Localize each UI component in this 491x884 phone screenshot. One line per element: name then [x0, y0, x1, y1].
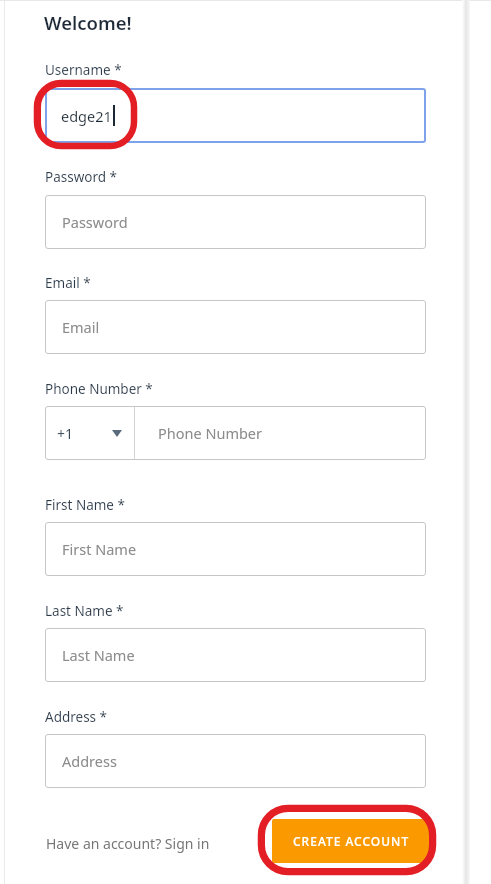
- staticText: Last Name: [62, 645, 135, 665]
- staticText: Address *: [45, 708, 108, 726]
- staticText: +1: [57, 424, 74, 443]
- staticText: CREATE ACCOUNT: [293, 833, 410, 849]
- staticText: Email: [62, 317, 100, 337]
- staticText: Password *: [45, 168, 118, 186]
- button[interactable]: +1: [45, 406, 426, 460]
- button[interactable]: Email: [45, 300, 426, 354]
- button[interactable]: First Name: [45, 522, 426, 576]
- staticText: Password: [62, 212, 128, 232]
- button[interactable]: Address: [45, 734, 426, 788]
- staticText: Username *: [45, 61, 122, 79]
- staticText: Welcome!: [44, 10, 132, 35]
- staticText: Email *: [45, 274, 91, 292]
- staticText: First Name *: [45, 496, 125, 514]
- staticText: edge21: [61, 106, 112, 126]
- button[interactable]: Password: [45, 195, 426, 249]
- staticText: Last Name *: [45, 602, 124, 620]
- button[interactable]: Last Name: [45, 628, 426, 682]
- staticText: Address: [62, 751, 117, 771]
- staticText: First Name: [62, 539, 137, 559]
- button[interactable]: Have an account? Sign in: [46, 834, 210, 853]
- staticText: Phone Number: [158, 423, 263, 443]
- button[interactable]: edge21: [45, 88, 426, 143]
- button[interactable]: CREATE ACCOUNT: [272, 819, 430, 863]
- staticText: Phone Number *: [45, 380, 153, 398]
